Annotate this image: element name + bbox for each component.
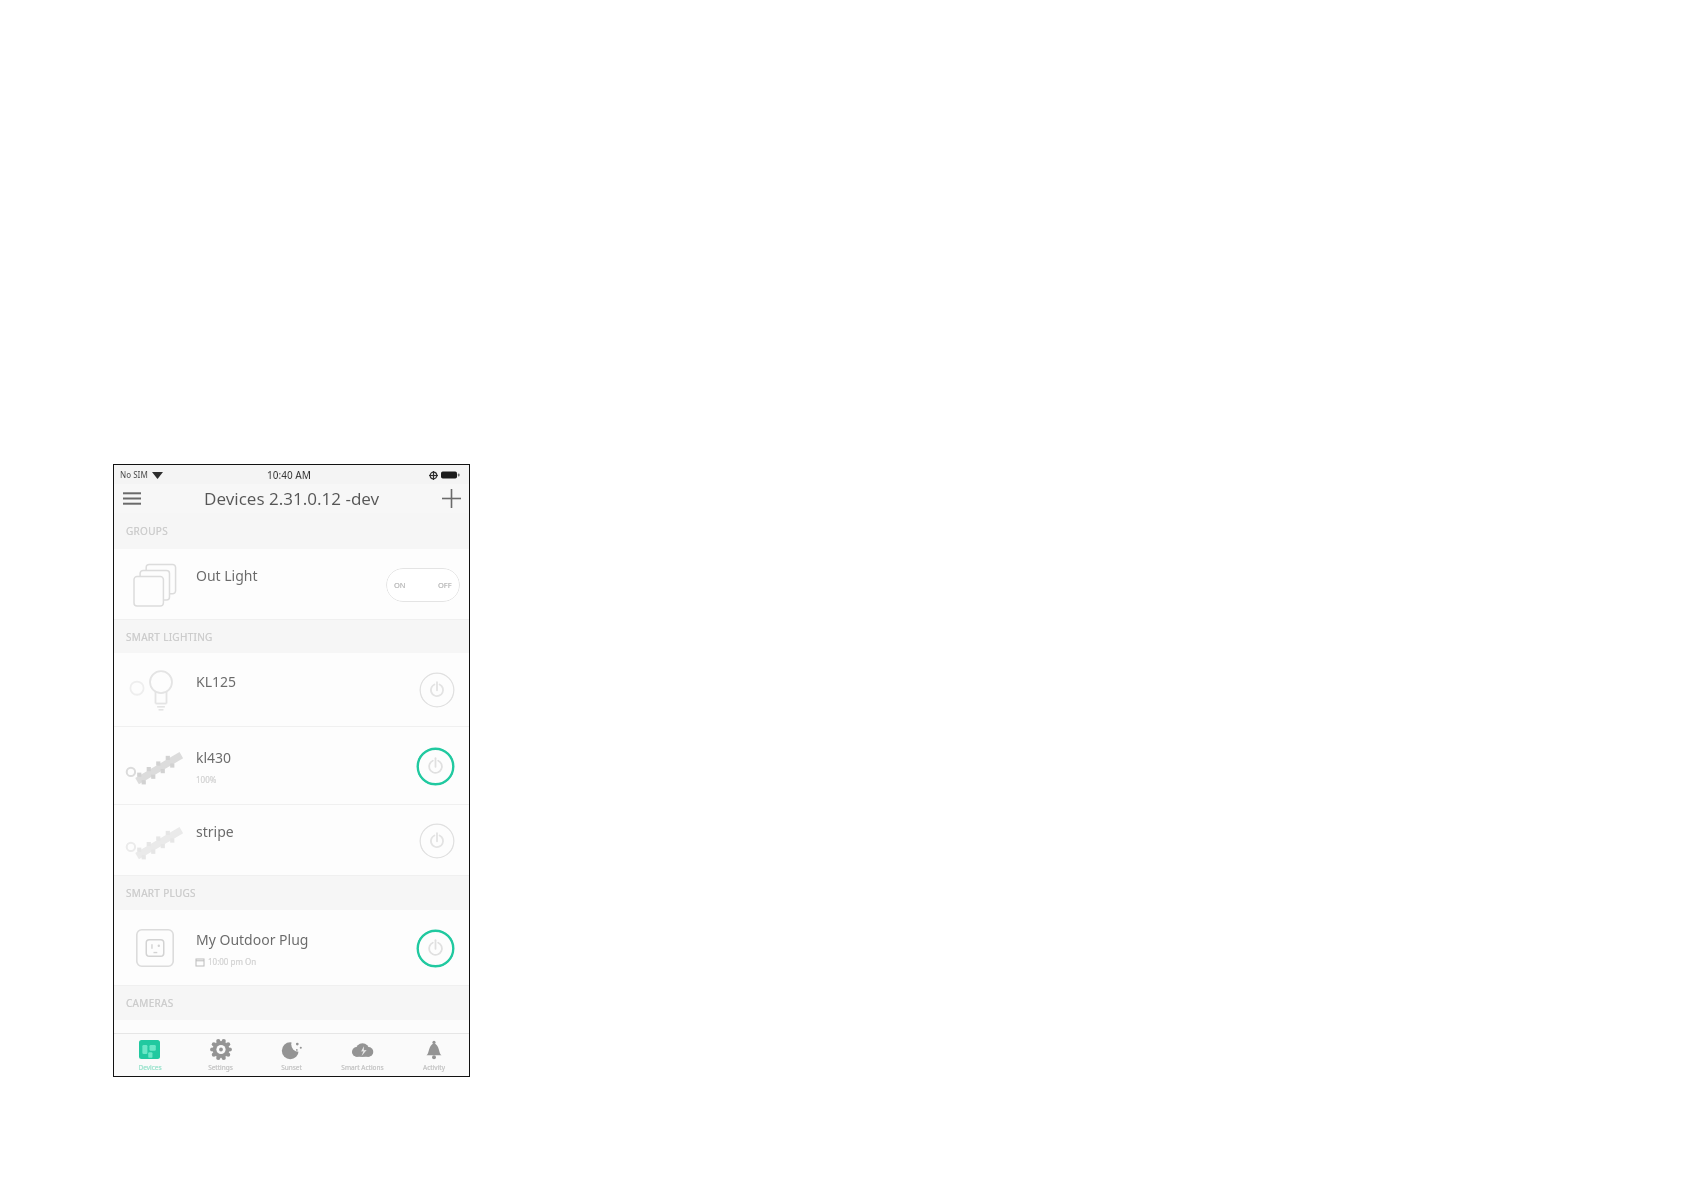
staticText: Smart Actions <box>341 1063 384 1072</box>
button[interactable]: Smart Actions <box>327 1034 398 1076</box>
staticText: 100% <box>196 774 217 785</box>
staticText: Settings <box>208 1063 233 1072</box>
button[interactable]: Turn off <box>416 929 455 968</box>
staticText: No SIM <box>120 469 148 480</box>
button[interactable]: Devices <box>114 1034 185 1076</box>
button[interactable]: Menu <box>114 484 150 513</box>
button[interactable]: Out Light <box>114 549 469 620</box>
staticText: 10:00 pm On <box>208 956 257 967</box>
button[interactable]: Turn off <box>416 747 455 786</box>
staticText: stripe <box>196 822 234 841</box>
button[interactable]: Activity <box>398 1034 469 1076</box>
button[interactable]: kl430 <box>114 727 469 805</box>
staticText: 10:40 AM <box>267 468 311 482</box>
button[interactable]: stripe <box>114 805 469 876</box>
button[interactable]: Turn on <box>419 672 455 708</box>
staticText: Devices <box>138 1063 162 1072</box>
staticText: SMART PLUGS <box>126 886 196 900</box>
button[interactable]: Sunset <box>256 1034 327 1076</box>
staticText: kl430 <box>196 748 232 767</box>
button[interactable]: Add device <box>433 484 469 513</box>
button[interactable]: Turn on <box>419 823 455 859</box>
staticText: Devices 2.31.0.12 -dev <box>204 487 380 510</box>
button[interactable]: Settings <box>185 1034 256 1076</box>
staticText: Out Light <box>196 566 258 585</box>
staticText: My Outdoor Plug <box>196 930 309 949</box>
button[interactable]: Group power on or off <box>386 568 460 602</box>
staticText: SMART LIGHTING <box>126 630 213 644</box>
staticText: Sunset <box>281 1063 302 1072</box>
button[interactable]: My Outdoor Plug <box>114 910 469 986</box>
staticText: GROUPS <box>126 524 168 538</box>
staticText: OFF <box>438 580 452 590</box>
staticText: CAMERAS <box>126 996 174 1010</box>
staticText: ON <box>394 580 406 590</box>
button[interactable]: KL125 <box>114 653 469 727</box>
staticText: Activity <box>423 1063 445 1072</box>
staticText: KL125 <box>196 672 237 691</box>
